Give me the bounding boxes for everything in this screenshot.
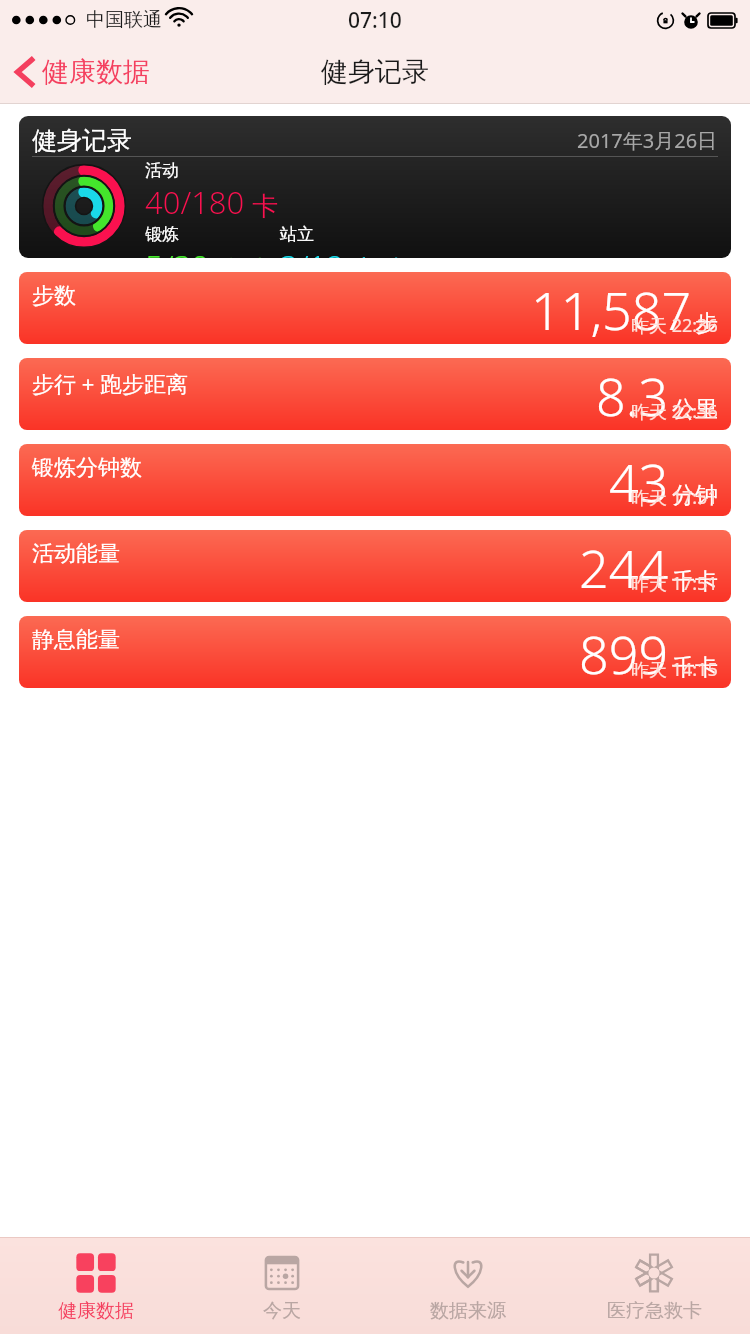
staticText: 899 <box>579 618 669 688</box>
button[interactable]: 医疗急救卡 <box>564 1244 744 1329</box>
staticText: 昨天 22:36 <box>631 399 718 424</box>
staticText: 千卡 <box>672 653 718 682</box>
button[interactable]: 今天 <box>192 1244 372 1329</box>
staticText: 中国联通 <box>86 8 162 32</box>
staticText: 11,587 <box>531 274 692 344</box>
staticText: 分钟 <box>672 481 718 510</box>
staticText: 数据来源 <box>430 1299 506 1323</box>
staticText: 锻炼 <box>145 224 179 245</box>
staticText: 3/12 <box>280 245 344 258</box>
staticText: 昨天 22:36 <box>631 313 718 338</box>
staticText: 07:10 <box>348 6 402 35</box>
staticText: 今天 <box>263 1299 301 1323</box>
staticText: 活动 <box>145 160 179 181</box>
staticText: 5/30 <box>145 245 209 258</box>
button[interactable]: 健身记录 <box>19 116 731 258</box>
button[interactable]: 健康数据 <box>6 1244 186 1329</box>
staticText: 步行 + 跑步距离 <box>32 368 189 398</box>
staticText: 昨天 17:51 <box>631 485 718 510</box>
staticText: 静息能量 <box>32 626 120 654</box>
staticText: 公里 <box>672 395 718 424</box>
staticText: 昨天 14:15 <box>631 657 718 682</box>
button[interactable]: 步数 <box>19 272 731 344</box>
staticText: 锻炼分钟数 <box>32 454 142 482</box>
staticText: 2017年3月26日 <box>577 127 718 154</box>
staticText: 站立 <box>280 224 314 245</box>
staticText: 千卡 <box>672 567 718 596</box>
staticText: 健康数据 <box>58 1299 134 1323</box>
staticText: 小时 <box>350 254 402 258</box>
staticText: 步数 <box>32 282 76 310</box>
staticText: 活动能量 <box>32 540 120 568</box>
staticText: 昨天 17:51 <box>631 571 718 596</box>
staticText: 244 <box>579 532 669 602</box>
staticText: 健康数据 <box>42 55 150 89</box>
button[interactable]: 锻炼分钟数 <box>19 444 731 516</box>
staticText: 分钟 <box>215 254 267 258</box>
staticText: 健身记录 <box>321 55 429 89</box>
button[interactable]: 步行 + 跑步距离 <box>19 358 731 430</box>
button[interactable]: 静息能量 <box>19 616 731 688</box>
button[interactable]: 健康数据 <box>0 47 164 97</box>
staticText: 43 <box>609 446 669 516</box>
staticText: 医疗急救卡 <box>607 1299 702 1323</box>
staticText: 步 <box>695 309 718 338</box>
button[interactable]: 数据来源 <box>378 1244 558 1329</box>
staticText: 健身记录 <box>32 125 132 156</box>
staticText: 卡 <box>252 190 278 223</box>
staticText: 40/180 <box>145 181 245 223</box>
button[interactable]: 活动能量 <box>19 530 731 602</box>
staticText: 8.3 <box>596 360 669 430</box>
